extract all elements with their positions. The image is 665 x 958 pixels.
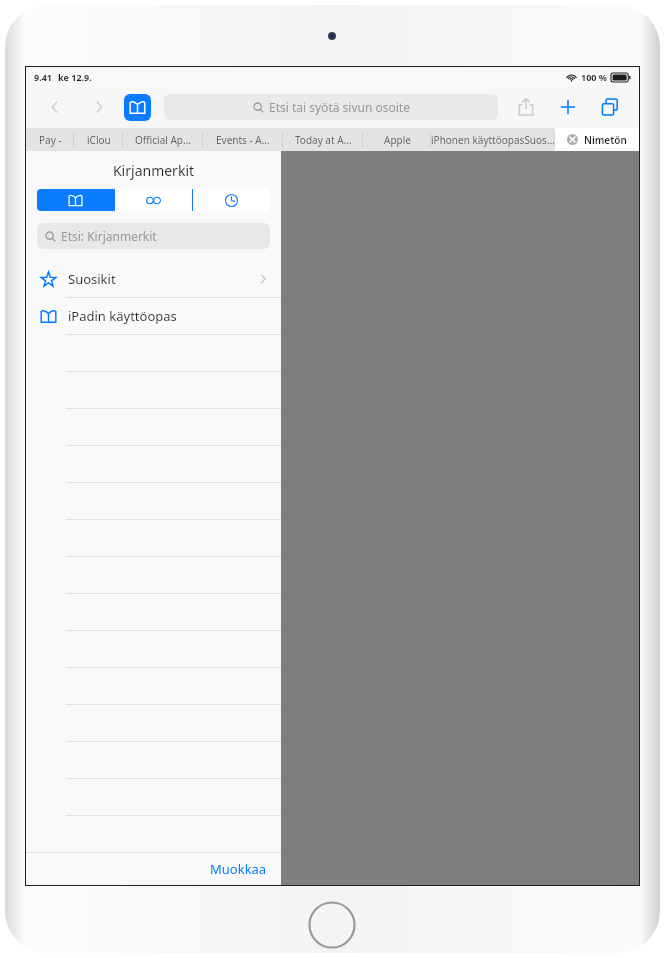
button[interactable]: Bookmarks [37, 189, 114, 211]
button[interactable]: Etsi: Kirjanmerkit [37, 223, 270, 249]
button[interactable]: iClou [74, 128, 123, 151]
staticText: Nimetön [584, 133, 627, 147]
staticText: iPhonen käyttöopasSuosikit [431, 133, 555, 147]
button[interactable]: History [193, 189, 270, 211]
button[interactable]: Show all tabs [595, 92, 625, 122]
button[interactable]: Share [511, 92, 541, 122]
staticText: 9.41 [34, 71, 52, 83]
button[interactable]: Events - A... [203, 128, 283, 151]
button[interactable]: Bookmarks [124, 94, 151, 121]
staticText: Apple [384, 133, 411, 147]
button[interactable]: Close tab [567, 134, 578, 145]
button[interactable]: Back [40, 92, 70, 122]
staticText: Today at A... [295, 133, 352, 147]
button[interactable]: Close tab [555, 128, 639, 151]
button[interactable]: Apple [363, 128, 431, 151]
staticText: Etsi: Kirjanmerkit [61, 228, 157, 244]
button[interactable]: iPadin käyttöopas [26, 298, 281, 334]
staticText: iPadin käyttöopas [68, 307, 177, 325]
button[interactable]: Official Ap... [123, 128, 203, 151]
staticText: Etsi tai syötä sivun osoite [269, 99, 410, 115]
staticText: iClou [87, 133, 111, 147]
button[interactable]: Etsi tai syötä sivun osoite [164, 94, 498, 120]
button[interactable]: Forward [84, 92, 114, 122]
staticText: Kirjanmerkit [26, 161, 281, 180]
staticText: 100 % [581, 71, 607, 83]
staticText: Events - A... [216, 133, 270, 147]
button[interactable]: Today at A... [283, 128, 363, 151]
button[interactable]: Suosikit [26, 261, 281, 297]
staticText: Muokkaa [210, 860, 267, 878]
button[interactable]: Muokkaa [210, 860, 267, 878]
button[interactable]: New tab [553, 92, 583, 122]
staticText: ke 12.9. [58, 71, 92, 83]
button[interactable]: Reading list [115, 189, 192, 211]
button[interactable]: iPhonen käyttöopasSuosikit [431, 128, 555, 151]
staticText: Pay - [39, 133, 62, 147]
staticText: Suosikit [68, 270, 116, 288]
staticText: Official Ap... [135, 133, 192, 147]
button[interactable]: Pay - [26, 128, 74, 151]
